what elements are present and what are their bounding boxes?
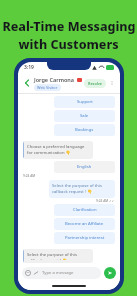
button[interactable]: Select the purpose of this callback requ… [23, 249, 93, 263]
button[interactable]: Support [54, 99, 115, 105]
button[interactable]: Web Visitor [37, 85, 58, 90]
staticText: Web Visitor [37, 85, 58, 90]
button[interactable]: Select the purpose of this callback requ… [52, 183, 112, 195]
button[interactable]: Become an Affiliate [54, 221, 115, 227]
button[interactable]: More options [108, 79, 116, 87]
staticText: with Customers [18, 36, 119, 53]
button[interactable]: Resolve [88, 81, 102, 86]
staticText: Support [77, 99, 93, 105]
staticText: Become an Affiliate [65, 221, 104, 227]
staticText: Jorge Carmona [34, 76, 75, 83]
button[interactable]: Sale [54, 113, 115, 119]
other: Emoji [25, 270, 31, 276]
button[interactable]: Bookings [54, 127, 115, 133]
button[interactable]: Back [22, 78, 32, 88]
staticText: Select the purpose of this callback requ… [27, 252, 90, 260]
staticText: 3:19 [24, 64, 34, 71]
staticText: 9:24 AM ✓✓ [96, 199, 115, 203]
button[interactable]: Emoji [25, 267, 98, 279]
button[interactable]: Choose a preferred language for communic… [23, 141, 93, 159]
other: Attach [33, 270, 39, 276]
staticText: Choose a preferred language for communic… [27, 144, 90, 156]
button[interactable]: Send [104, 267, 116, 279]
staticText: Sale [80, 113, 89, 119]
staticText: Resolve [88, 81, 102, 86]
staticText: Clarification [73, 207, 97, 213]
staticText: Partnership interest [65, 235, 105, 241]
staticText: Real-Time Messaging [2, 18, 136, 35]
staticText: Select the purpose of this callback requ… [52, 183, 112, 195]
staticText: Bookings [75, 127, 94, 133]
button[interactable]: Clarification [54, 207, 115, 213]
staticText: Type a message [42, 270, 74, 276]
staticText: 9:24 AM [23, 174, 36, 178]
button[interactable]: English [54, 164, 115, 170]
button[interactable]: Partnership interest [54, 235, 115, 241]
staticText: English [77, 164, 92, 170]
